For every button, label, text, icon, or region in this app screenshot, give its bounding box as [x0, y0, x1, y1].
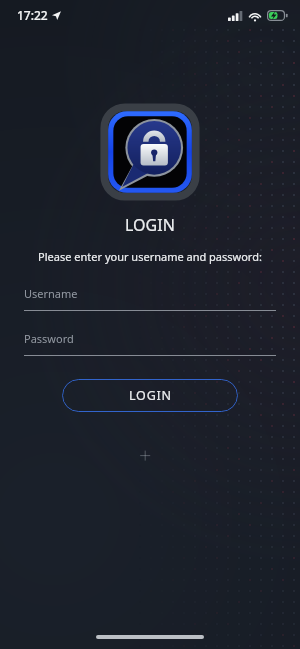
- button[interactable]: LOGIN: [62, 379, 238, 412]
- button[interactable]: Password: [24, 331, 276, 356]
- staticText: 17:22: [17, 7, 48, 23]
- button[interactable]: Username: [24, 286, 276, 311]
- staticText: Password: [24, 331, 74, 346]
- staticText: Please enter your username and password:: [38, 249, 262, 264]
- staticText: LOGIN: [129, 387, 172, 404]
- staticText: Username: [24, 286, 78, 301]
- staticText: LOGIN: [125, 214, 175, 236]
